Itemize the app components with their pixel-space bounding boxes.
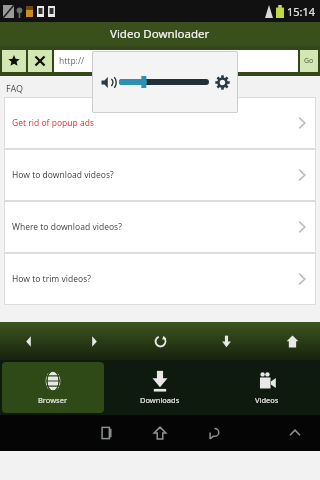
button[interactable]: Star / bookmark	[2, 50, 26, 72]
button[interactable]: Refresh	[146, 327, 174, 355]
button[interactable]: Forward	[80, 327, 108, 355]
button[interactable]: Go	[300, 50, 318, 72]
button[interactable]: Expand	[284, 422, 306, 444]
button[interactable]: Browser	[2, 362, 104, 413]
button[interactable]: Clear	[28, 50, 52, 72]
staticText: FAQ	[6, 82, 24, 94]
button[interactable]: Download	[212, 327, 240, 355]
button[interactable]: http://	[54, 50, 298, 72]
staticText: 15:14	[287, 4, 316, 19]
button[interactable]: Settings	[215, 75, 230, 90]
button[interactable]: Back	[200, 419, 228, 447]
button[interactable]	[122, 74, 206, 90]
staticText: Get rid of popup ads	[12, 117, 95, 129]
staticText: Browser	[38, 395, 68, 405]
button[interactable]: Recents	[92, 419, 120, 447]
button[interactable]: Where to download videos?	[4, 201, 316, 253]
staticText: Video Downloader	[110, 26, 210, 42]
button[interactable]: Get rid of popup ads	[4, 97, 316, 149]
button[interactable]: Home	[146, 419, 174, 447]
button[interactable]: How to download videos?	[4, 149, 316, 201]
staticText: How to download videos?	[12, 169, 114, 181]
button[interactable]: Home	[278, 327, 306, 355]
button[interactable]: Downloads	[108, 362, 211, 413]
staticText: Videos	[255, 395, 279, 405]
staticText: How to trim videos?	[12, 273, 91, 285]
button[interactable]: Volume	[100, 75, 115, 90]
staticText: Go	[304, 56, 314, 66]
button[interactable]: How to trim videos?	[4, 253, 316, 305]
button[interactable]: Back	[14, 327, 42, 355]
button[interactable]: Videos	[215, 362, 318, 413]
staticText: Downloads	[140, 395, 180, 405]
staticText: http://	[59, 55, 85, 67]
staticText: Where to download videos?	[12, 221, 122, 233]
